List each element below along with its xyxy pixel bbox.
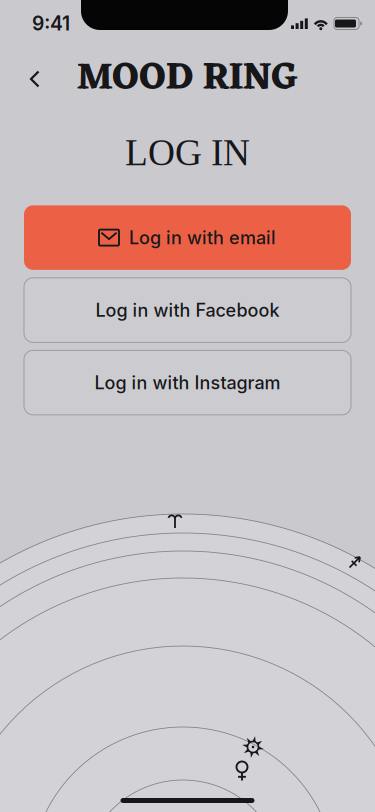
staticText: 9:41 [32,12,70,35]
button[interactable]: Back [13,57,57,101]
staticText: Log in with Facebook [95,299,279,321]
button[interactable]: Log in with email [24,205,351,270]
staticText: Log in with email [129,227,276,248]
button[interactable]: Log in with Instagram [24,350,351,415]
staticText: MOOD RING [76,46,298,112]
button[interactable]: Log in with Facebook [24,278,351,342]
staticText: LOG IN [125,132,250,173]
staticText: Log in with Instagram [94,372,280,393]
